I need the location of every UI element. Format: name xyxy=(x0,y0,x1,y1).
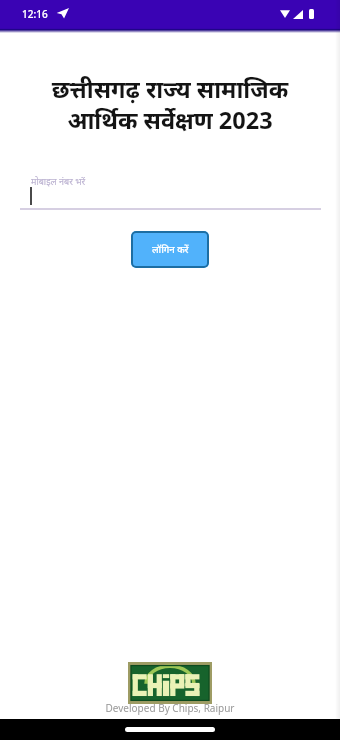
staticText: मोबाइल नंबर भरें xyxy=(31,175,86,187)
staticText: 12:16 xyxy=(22,7,48,21)
staticText: लॉगिन करें xyxy=(152,243,189,256)
staticText: Developed By Chips, Raipur xyxy=(0,701,340,715)
staticText: छत्तीसगढ़ राज्य सामाजिक आर्थिक सर्वेक्षण… xyxy=(0,73,340,135)
button[interactable]: Login xyxy=(131,231,209,268)
button[interactable]: Mobile number input xyxy=(20,172,321,211)
